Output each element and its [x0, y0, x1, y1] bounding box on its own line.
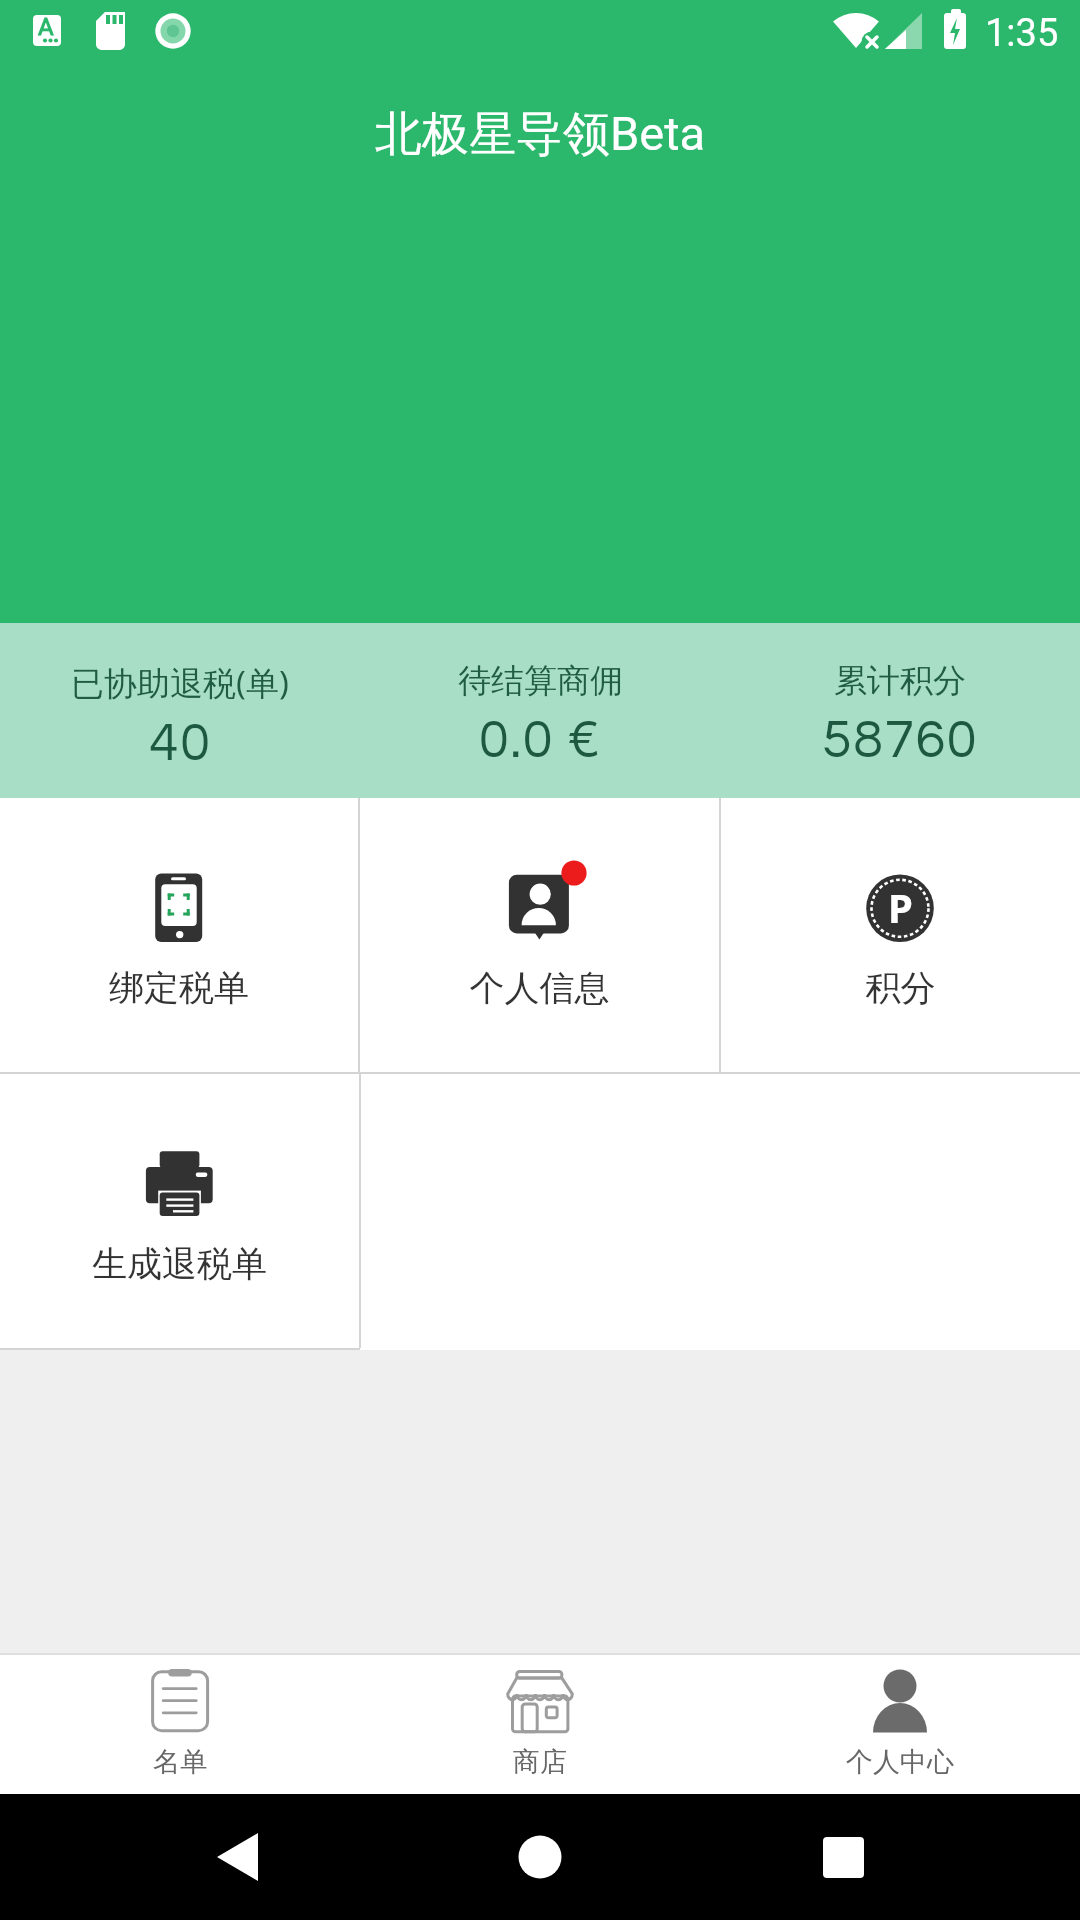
staticText: 生成退税单: [0, 1242, 359, 1286]
staticText: 待结算商佣: [458, 660, 623, 702]
button[interactable]: 累计积分: [720, 623, 1080, 798]
staticText: P: [888, 880, 913, 934]
staticText: 0.0 €: [479, 713, 602, 769]
other: 个人中心: [872, 1669, 928, 1733]
other: 名单: [150, 1669, 210, 1733]
button[interactable]: 名单: [0, 1655, 360, 1794]
button[interactable]: 个人信息: [360, 798, 719, 1072]
button[interactable]: 已协助退税(单): [0, 623, 360, 798]
staticText: 1:35: [985, 11, 1059, 56]
button[interactable]: Home: [480, 1794, 600, 1920]
staticText: 个人信息: [360, 966, 719, 1010]
staticText: 名单: [153, 1745, 207, 1779]
staticText: 绑定税单: [0, 966, 358, 1010]
button[interactable]: 待结算商佣: [360, 623, 720, 798]
staticText: 个人中心: [846, 1745, 954, 1779]
button[interactable]: 绑定税单: [0, 798, 358, 1072]
staticText: 40: [149, 716, 212, 772]
button[interactable]: 生成退税单: [0, 1074, 359, 1348]
button[interactable]: 商店: [360, 1655, 720, 1794]
button[interactable]: 个人中心: [720, 1655, 1080, 1794]
other: 商店: [507, 1669, 573, 1733]
staticText: 已协助退税(单): [71, 660, 289, 705]
button[interactable]: Back: [177, 1794, 297, 1920]
button[interactable]: Recent apps: [784, 1794, 904, 1920]
staticText: 58760: [822, 713, 978, 769]
button[interactable]: P: [721, 798, 1080, 1072]
staticText: 积分: [721, 966, 1080, 1010]
staticText: A: [38, 13, 54, 41]
staticText: 北极星导领Beta: [0, 105, 1080, 164]
staticText: 商店: [513, 1745, 567, 1779]
staticText: 累计积分: [834, 660, 966, 702]
